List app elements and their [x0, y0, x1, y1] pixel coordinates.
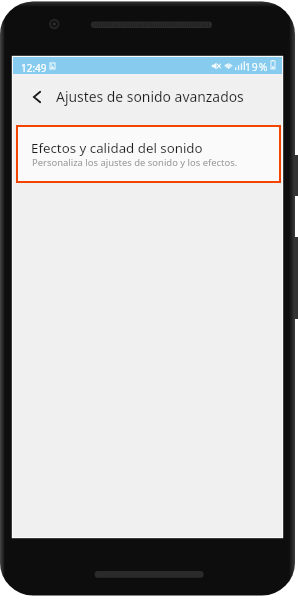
staticText: 12:49 — [21, 61, 47, 75]
button[interactable]: Back — [19, 77, 46, 104]
button[interactable]: Efectos y calidad del sonido — [16, 125, 281, 183]
staticText: 19% — [245, 60, 269, 74]
staticText: Personaliza los ajustes de sonido y los … — [32, 156, 238, 169]
staticText: Efectos y calidad del sonido — [31, 139, 203, 157]
staticText: Ajustes de sonido avanzados — [56, 87, 244, 106]
